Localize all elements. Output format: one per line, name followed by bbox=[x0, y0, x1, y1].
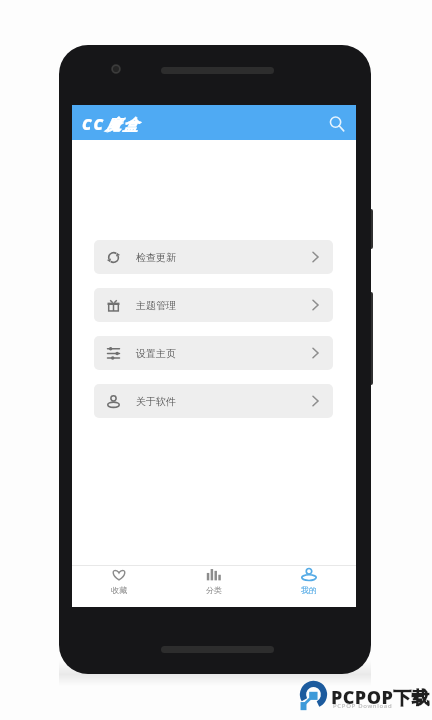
staticText: 我的 bbox=[301, 585, 317, 595]
staticText: 分类 bbox=[206, 585, 222, 595]
button[interactable]: 关于软件 bbox=[94, 384, 333, 418]
button[interactable]: 分类 bbox=[166, 566, 261, 607]
button[interactable]: 设置主页 bbox=[94, 336, 333, 370]
staticText: 主题管理 bbox=[136, 299, 176, 312]
staticText: 检查更新 bbox=[136, 251, 176, 264]
button[interactable]: Search bbox=[326, 112, 348, 134]
staticText: 关于软件 bbox=[136, 395, 176, 408]
staticText: 设置主页 bbox=[136, 347, 176, 360]
staticText: 收藏 bbox=[111, 585, 127, 595]
staticText: PCPOP Download bbox=[333, 702, 393, 710]
staticText: PCPOP下载 bbox=[331, 685, 430, 710]
button[interactable]: 收藏 bbox=[72, 566, 166, 607]
button[interactable]: 检查更新 bbox=[94, 240, 333, 274]
button[interactable]: 主题管理 bbox=[94, 288, 333, 322]
button[interactable]: CC魔盒 bbox=[72, 105, 356, 140]
button[interactable]: 我的 bbox=[261, 566, 356, 607]
staticText: CC魔盒 bbox=[82, 114, 141, 134]
